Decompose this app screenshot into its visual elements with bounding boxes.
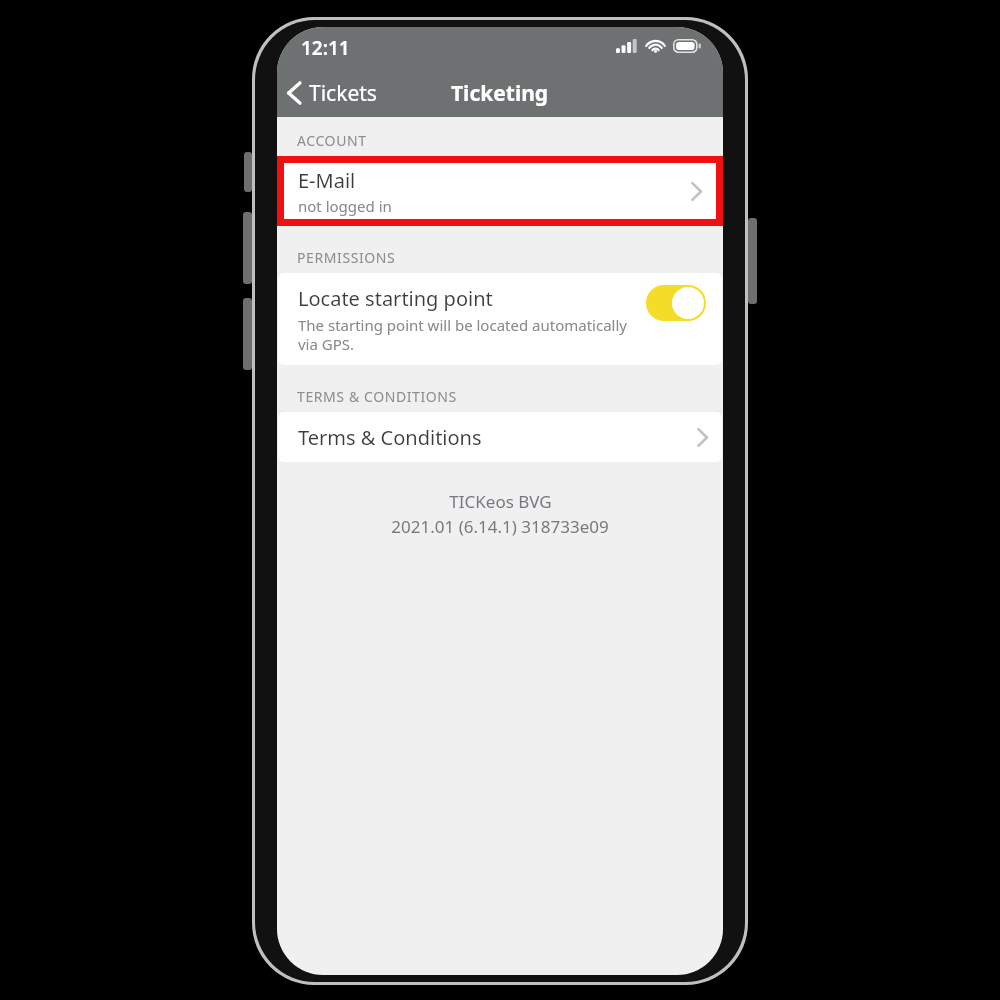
staticText: Locate starting point	[298, 285, 493, 312]
staticText: PERMISSIONS	[297, 248, 396, 267]
button[interactable]: E-Mail	[284, 163, 716, 219]
staticText: 12:11	[301, 35, 350, 61]
button[interactable]: Terms & Conditions	[278, 412, 722, 462]
staticText: TERMS & CONDITIONS	[297, 387, 457, 406]
staticText: 2021.01 (6.14.1) 318733e09	[391, 515, 609, 538]
staticText: The starting point will be located autom…	[298, 315, 632, 354]
button[interactable]: Locate starting point	[278, 273, 722, 365]
staticText: ACCOUNT	[297, 131, 367, 150]
button[interactable]: Locate starting point toggle, on	[646, 285, 706, 321]
staticText: E-Mail	[298, 167, 356, 194]
staticText: Tickets	[309, 79, 377, 108]
staticText: not logged in	[298, 196, 392, 216]
button[interactable]: Tickets	[277, 69, 389, 117]
staticText: Terms & Conditions	[298, 424, 482, 451]
staticText: TICKeos BVG	[449, 490, 552, 513]
staticText: Ticketing	[451, 79, 549, 108]
